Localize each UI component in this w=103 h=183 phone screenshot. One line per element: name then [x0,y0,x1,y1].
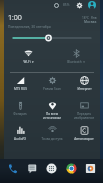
button[interactable]: Chrome [65,162,78,175]
staticText: Интернет [77,87,92,91]
staticText: По всем источникам [37,112,67,120]
button[interactable]: Передать изображение экрана [68,98,100,123]
button[interactable]: All apps [45,162,58,175]
button[interactable]: По всем источникам [36,98,68,123]
button[interactable]: Фонарик [4,98,36,123]
button[interactable]: AudioFX [4,123,36,148]
button[interactable]: Интернет [68,73,100,98]
staticText: Wi-Fi ▾ [23,60,34,64]
staticText: 18°C Янв [82,16,97,20]
staticText: Передать изображение экрана [69,112,99,120]
staticText: Режим Scan [43,87,61,91]
staticText: Автоповорот [74,137,94,141]
button[interactable]: MTS RUS [4,73,36,98]
button[interactable]: Camera [84,162,97,175]
button[interactable]: Phone [6,162,19,175]
button[interactable]: Messages [26,162,39,175]
button[interactable]: Brightness [4,30,100,46]
staticText: 1:00 [8,13,22,23]
staticText: 85% [63,3,70,7]
button[interactable]: Settings [74,0,84,10]
button[interactable]: Режим Scan [36,73,68,98]
button[interactable]: Bluetooth ▾ [52,46,100,72]
staticText: AudioFX [14,137,26,141]
staticText: Понедельник, 30 сентября [8,24,51,28]
staticText: Москва [84,20,97,24]
staticText: Точка доступа [41,137,63,141]
button[interactable]: Wi-Fi ▾ [4,46,52,72]
button[interactable]: User profile [87,0,97,10]
staticText: Bluetooth ▾ [67,60,85,64]
button[interactable]: Автоповорот [68,123,100,148]
button[interactable]: Точка доступа [36,123,68,148]
staticText: MTS RUS [14,87,27,91]
button[interactable]: 18°C Янв [82,16,97,24]
button[interactable]: Battery [51,1,62,10]
button[interactable]: 1:00 [8,13,82,28]
staticText: Фонарик [13,112,27,116]
